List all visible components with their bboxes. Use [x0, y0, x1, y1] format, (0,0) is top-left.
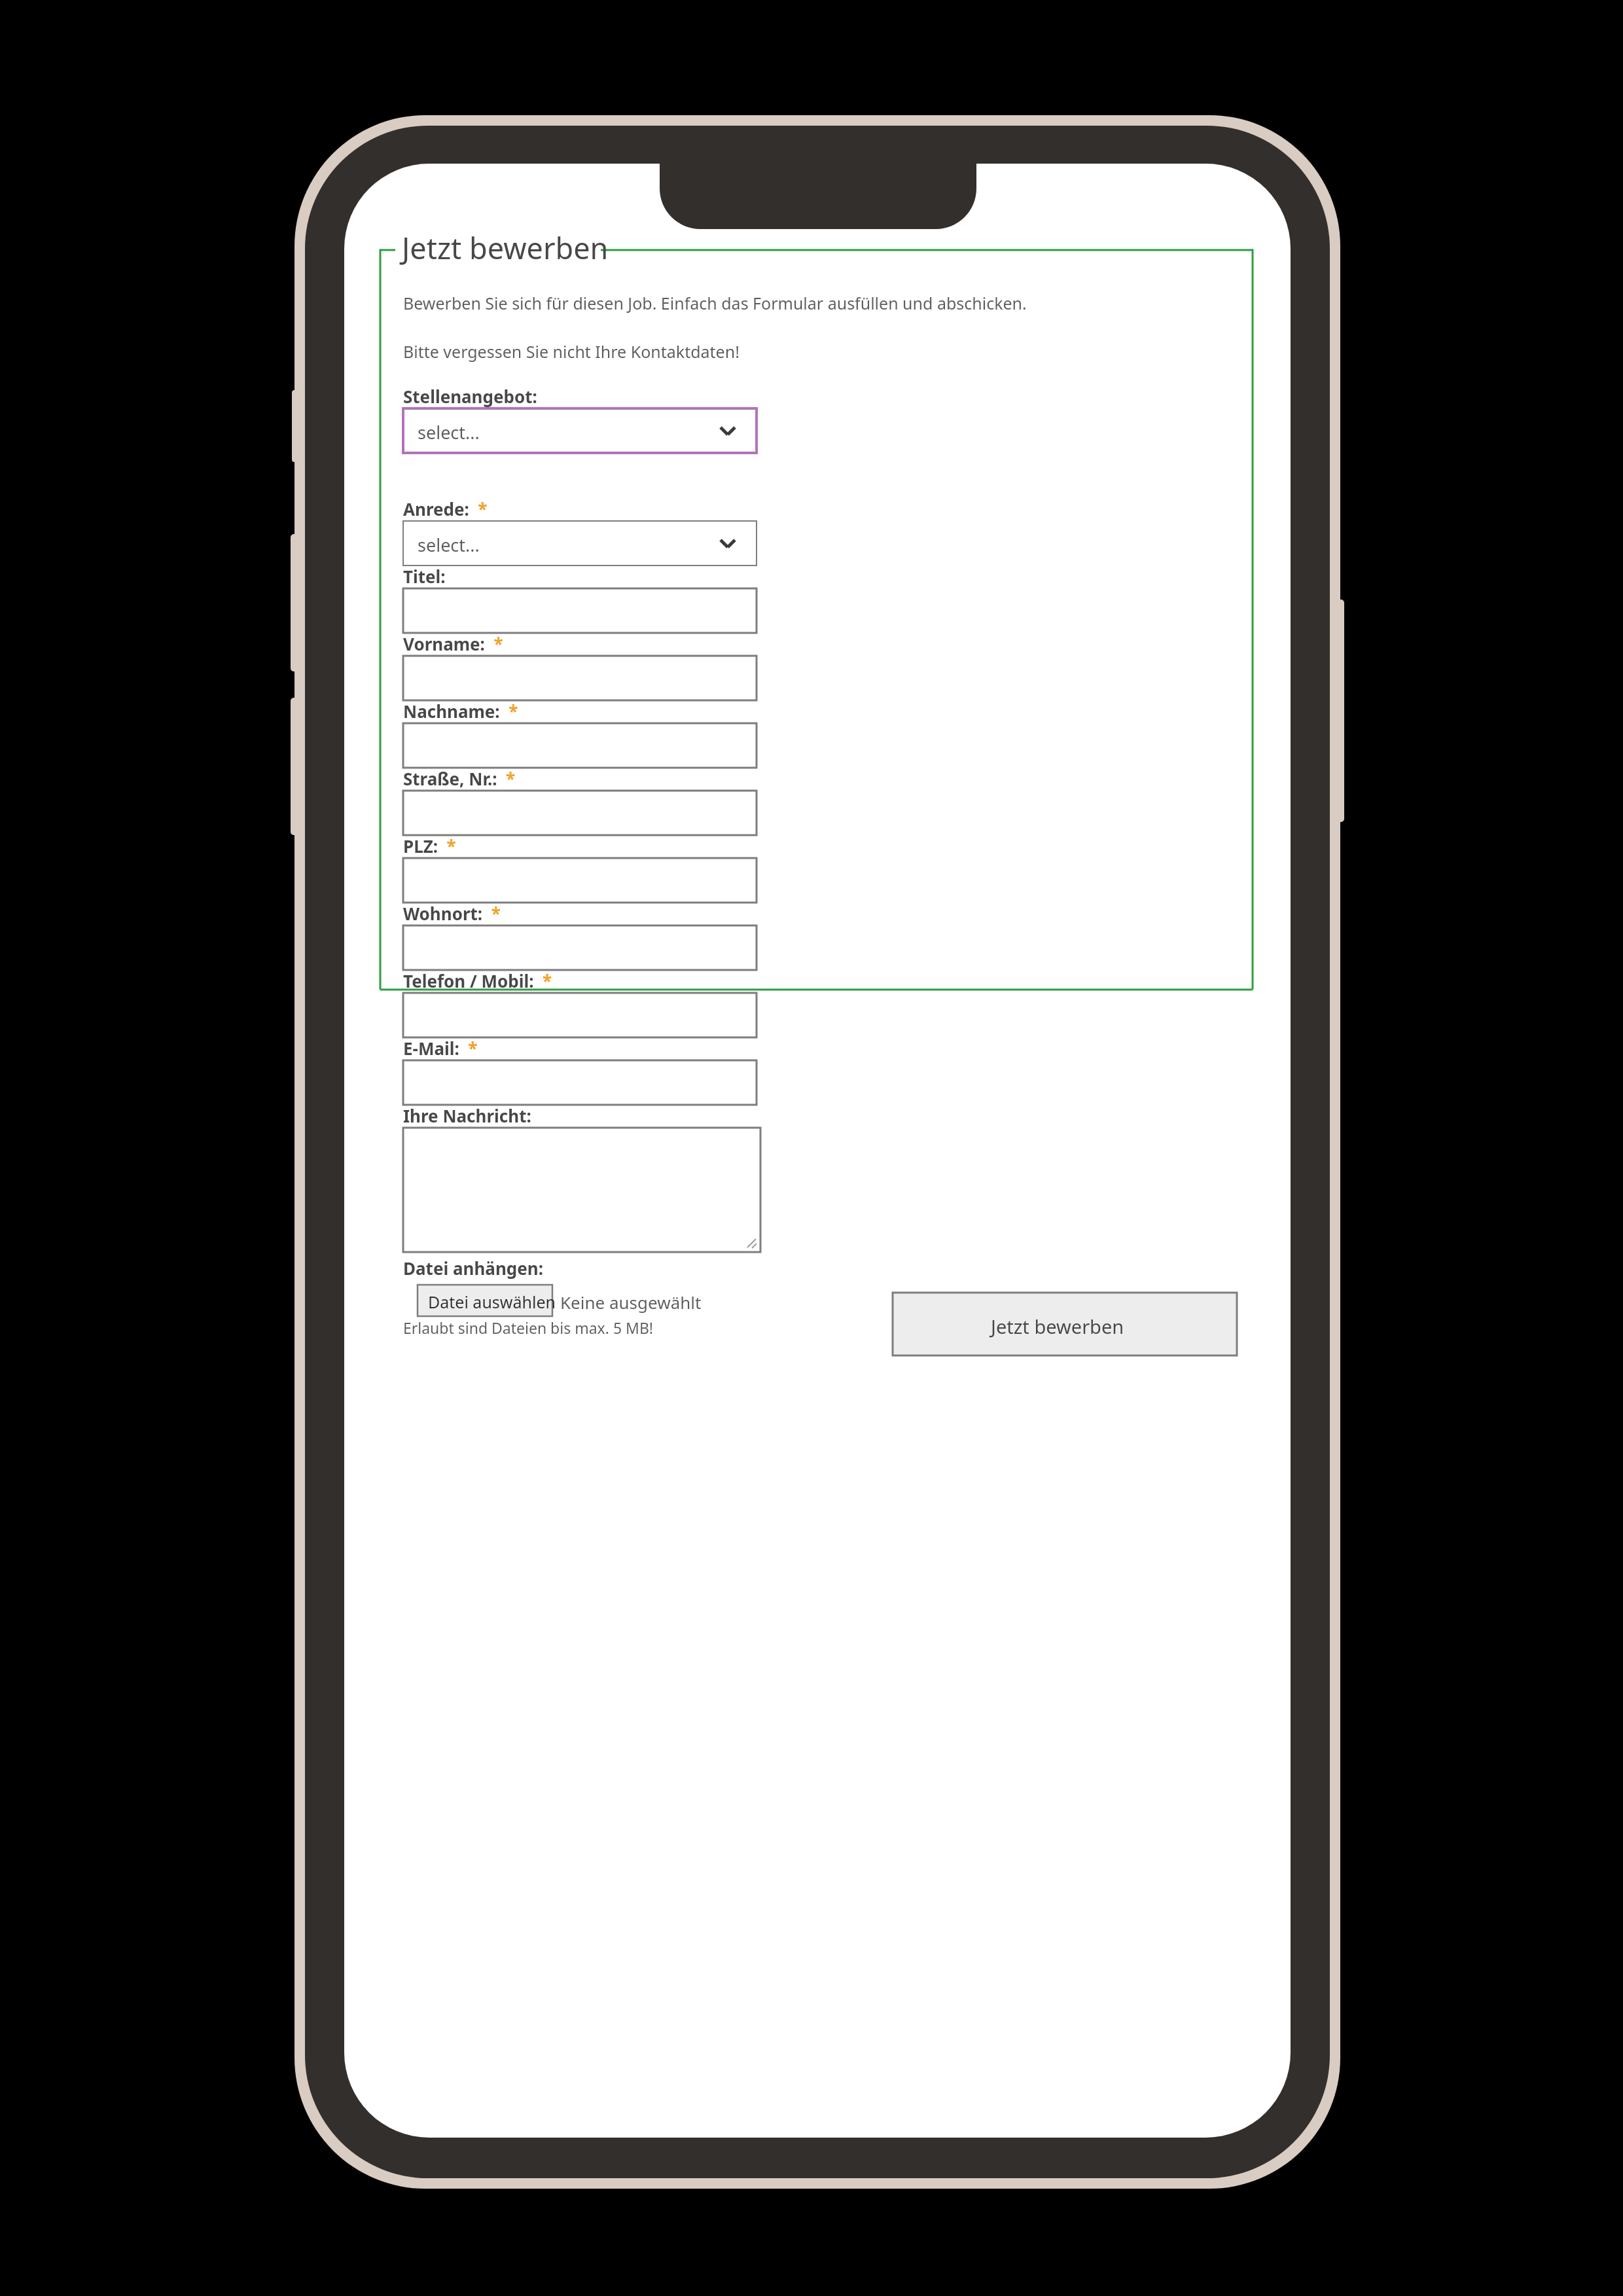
staticText: E-Mail: * [403, 1037, 478, 1060]
staticText: Telefon / Mobil: * [403, 969, 552, 992]
button[interactable] [403, 993, 757, 1037]
staticText: Straße, Nr.: * [403, 767, 516, 790]
staticText: Ihre Nachricht: [403, 1104, 531, 1127]
staticText: Erlaubt sind Dateien bis max. 5 MB! [403, 1318, 654, 1338]
other: Volume up [291, 534, 298, 672]
staticText: Titel: [403, 565, 446, 588]
staticText: Datei anhängen: [403, 1257, 543, 1280]
other: Power [1336, 600, 1344, 822]
button[interactable]: Datei auswählen [418, 1285, 552, 1316]
staticText: select... [418, 533, 480, 557]
button[interactable] [403, 791, 757, 835]
staticText: Keine ausgewählt [560, 1291, 702, 1314]
button[interactable]: select... [403, 408, 757, 453]
staticText: Anrede: * [403, 497, 488, 520]
staticText: Nachname: * [403, 700, 518, 723]
button[interactable] [403, 925, 757, 970]
staticText: PLZ: * [403, 834, 456, 857]
staticText: Jetzt bewerben [991, 1314, 1124, 1339]
button[interactable]: select... [403, 521, 757, 565]
staticText: Wohnort: * [403, 902, 501, 925]
button[interactable] [403, 656, 757, 700]
staticText: Bewerben Sie sich für diesen Job. Einfac… [403, 292, 1027, 314]
button[interactable] [403, 723, 757, 768]
staticText: select... [418, 420, 480, 444]
staticText: Stellenangebot: [403, 385, 537, 408]
other: Mute switch [292, 390, 298, 462]
button[interactable]: Jetzt bewerben [893, 1293, 1237, 1355]
button[interactable] [403, 1060, 757, 1105]
other: Volume down [291, 698, 298, 835]
staticText: Jetzt bewerben [402, 228, 609, 268]
button[interactable] [403, 858, 757, 903]
button[interactable] [403, 1128, 760, 1252]
staticText: Bitte vergessen Sie nicht Ihre Kontaktda… [403, 340, 740, 363]
staticText: Datei auswählen [428, 1291, 556, 1313]
button[interactable] [403, 588, 757, 633]
staticText: Vorname: * [403, 632, 503, 655]
